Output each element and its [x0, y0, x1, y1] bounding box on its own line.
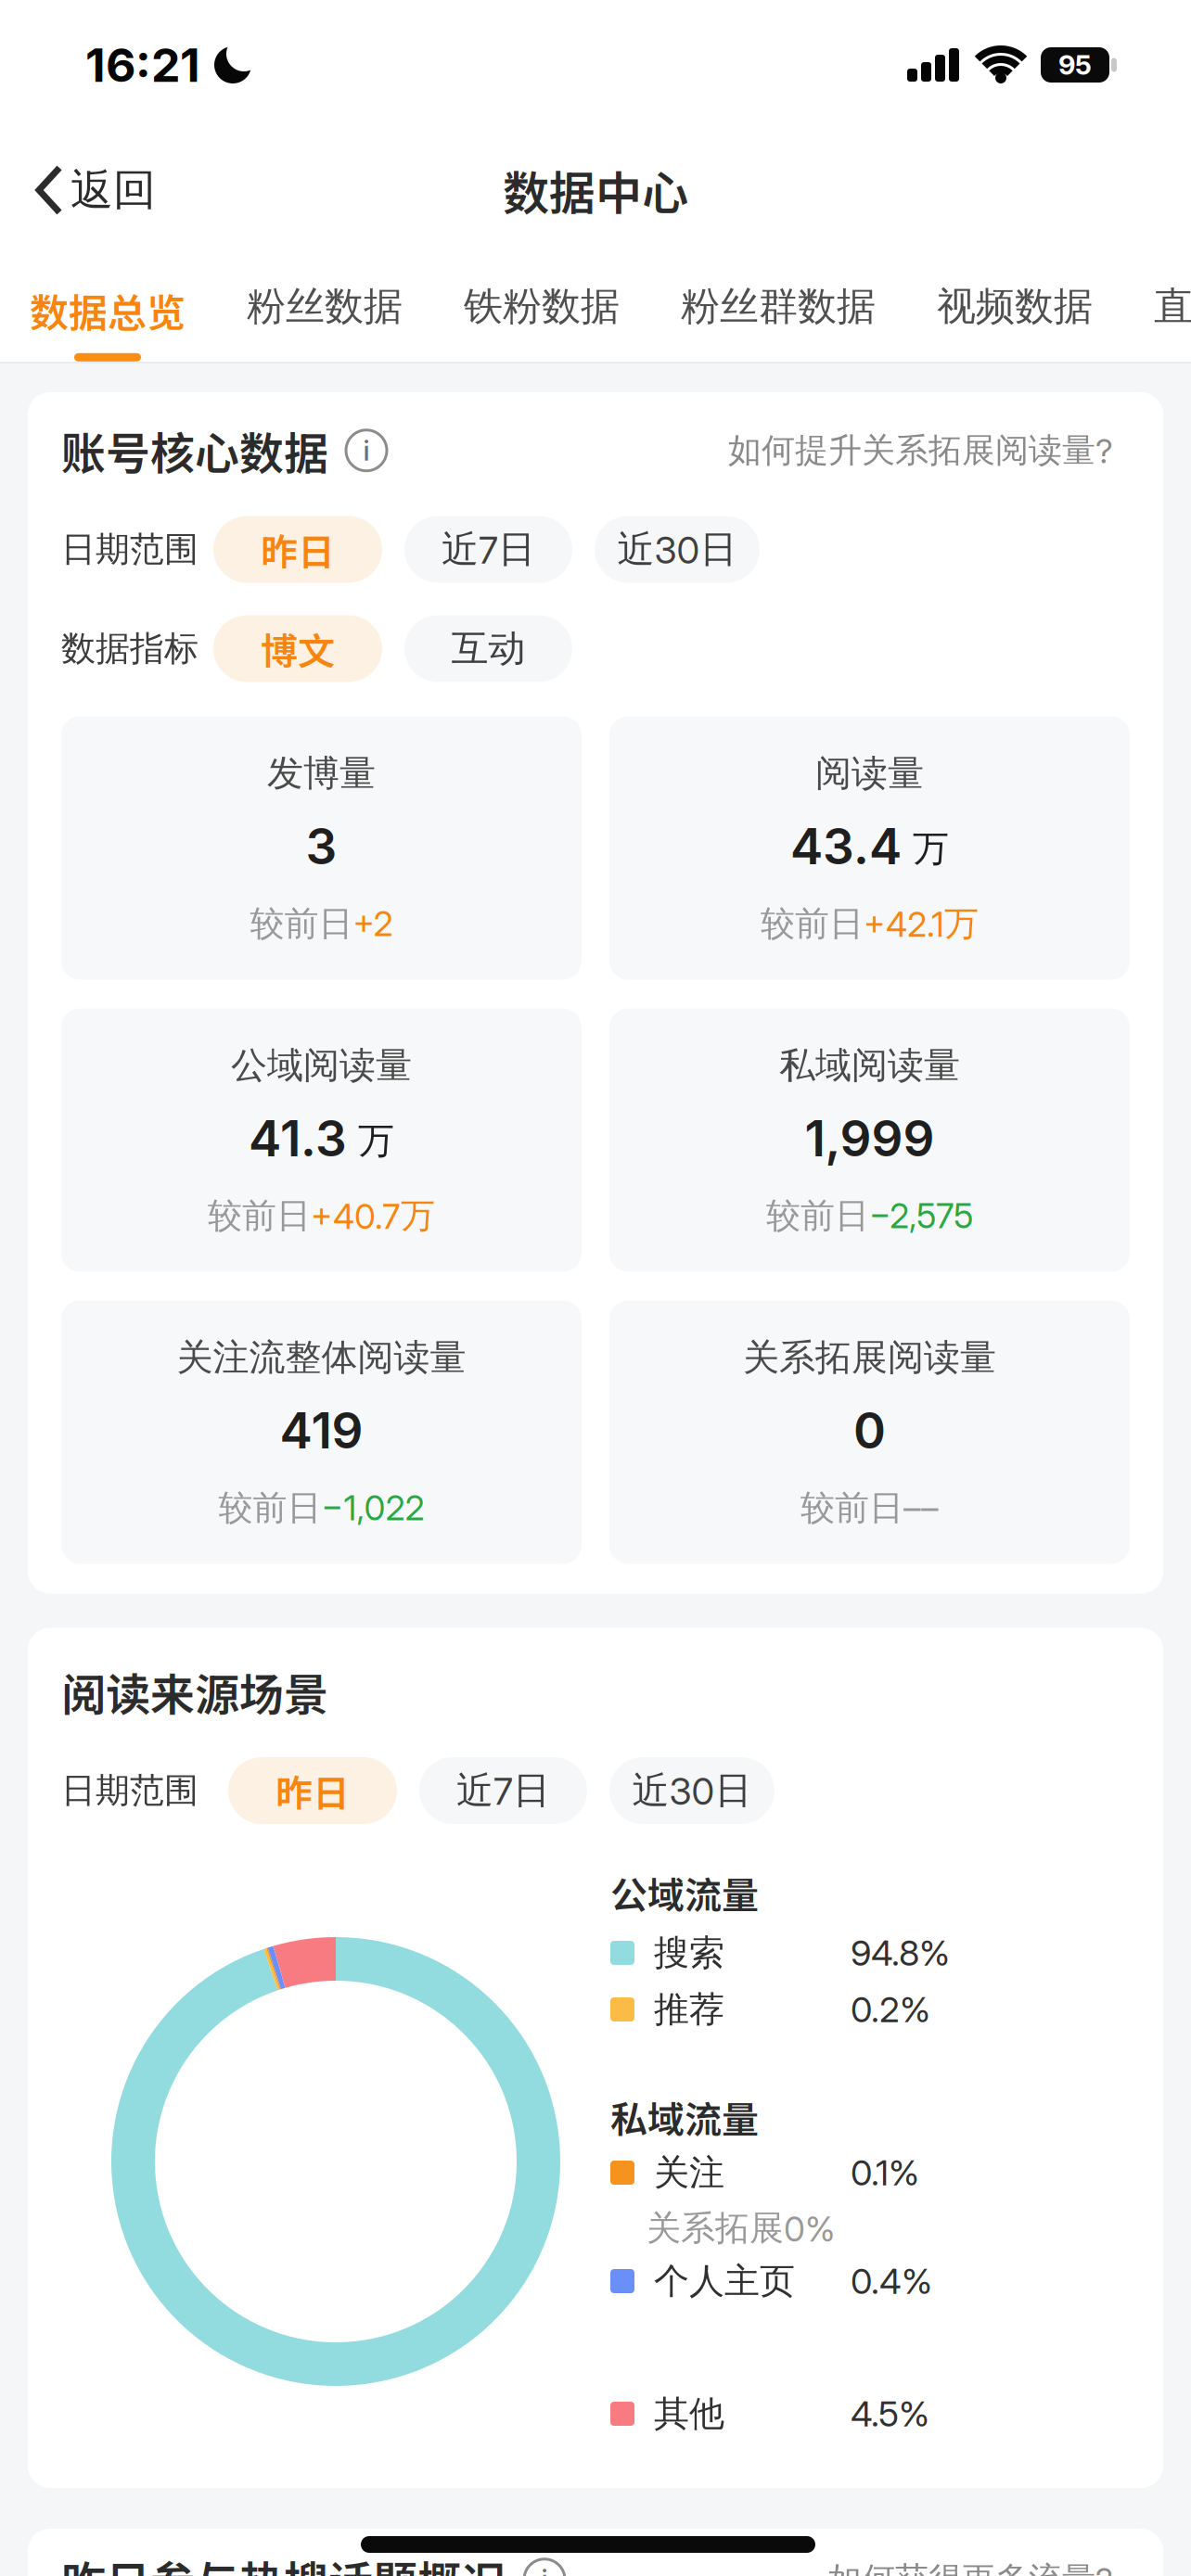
staticText: 41.3	[249, 1109, 347, 1168]
staticText: +2	[353, 903, 393, 944]
staticText: 其他	[654, 2392, 724, 2436]
button[interactable]: 近7日	[419, 1757, 587, 1824]
staticText: 关注流整体阅读量	[177, 1335, 466, 1380]
staticText: i	[541, 2563, 548, 2576]
button[interactable]: 昨日	[228, 1757, 397, 1824]
staticText: 发博量	[267, 751, 376, 796]
staticText: 近30日	[632, 1767, 752, 1814]
button[interactable]: 如何提升关系拓展阅读量?	[728, 429, 1113, 472]
staticText: 互动	[451, 625, 525, 672]
staticText: 关系拓展0%	[647, 2207, 835, 2250]
button[interactable]: 近7日	[404, 516, 572, 583]
button[interactable]: 数据总览	[30, 282, 186, 361]
staticText: −2,575	[869, 1195, 973, 1237]
staticText: 419	[280, 1401, 363, 1460]
staticText: 数据总览	[30, 282, 186, 338]
staticText: 个人主页	[654, 2259, 795, 2303]
staticText: 较前日	[800, 1486, 903, 1529]
button[interactable]: 昨日	[213, 516, 382, 583]
button[interactable]: 粉丝数据	[247, 282, 403, 331]
staticText: 较前日	[218, 1486, 321, 1529]
staticText: 返回	[70, 163, 156, 217]
staticText: 公域流量	[610, 1866, 759, 1919]
staticText: 0.1%	[851, 2151, 919, 2194]
button[interactable]: 近30日	[595, 516, 760, 583]
staticText: 直播数据	[1154, 282, 1191, 331]
staticText: 搜索	[654, 1931, 724, 1975]
staticText: +40.7万	[311, 1194, 435, 1237]
button[interactable]: 详情	[345, 429, 388, 472]
staticText: 关系拓展阅读量	[743, 1335, 996, 1380]
staticText: 万	[358, 1118, 394, 1164]
staticText: 阅读来源场景	[61, 1659, 328, 1724]
staticText: 关注	[654, 2150, 724, 2195]
staticText: 近7日	[442, 526, 535, 573]
staticText: 如何获得更多流量?	[828, 2558, 1113, 2576]
staticText: 近30日	[617, 526, 737, 573]
staticText: 0	[853, 1401, 886, 1460]
staticText: 如何提升关系拓展阅读量?	[728, 429, 1113, 472]
staticText: 数据指标	[61, 627, 198, 670]
staticText: 数据中心	[503, 157, 688, 224]
staticText: 近7日	[456, 1767, 550, 1814]
staticText: 43.4	[790, 817, 902, 876]
staticText: 3	[306, 817, 337, 876]
staticText: 95	[1058, 49, 1092, 81]
button[interactable]: 返回	[35, 163, 156, 217]
button[interactable]: 详情	[523, 2558, 566, 2576]
staticText: −1,022	[321, 1487, 424, 1529]
staticText: 较前日	[761, 902, 864, 945]
button[interactable]: 如何获得更多流量?	[828, 2558, 1113, 2576]
staticText: +42.1万	[864, 902, 979, 945]
staticText: 铁粉数据	[464, 282, 620, 331]
staticText: 4.5%	[851, 2392, 929, 2435]
staticText: 较前日	[208, 1194, 311, 1237]
staticText: 日期范围	[61, 1769, 198, 1812]
staticText: 粉丝群数据	[681, 282, 876, 331]
staticText: 昨日	[261, 523, 335, 576]
staticText: 较前日	[766, 1194, 869, 1237]
staticText: 博文	[261, 622, 335, 675]
staticText: 阅读量	[815, 751, 924, 796]
staticText: 粉丝数据	[247, 282, 403, 331]
button[interactable]: 近30日	[609, 1757, 775, 1824]
button[interactable]: 铁粉数据	[464, 282, 620, 331]
staticText: 私域阅读量	[779, 1043, 960, 1088]
staticText: 0.2%	[851, 1988, 930, 2031]
staticText: ––	[903, 1487, 939, 1529]
staticText: i	[363, 434, 370, 467]
button[interactable]: 粉丝群数据	[681, 282, 876, 331]
button[interactable]: 互动	[404, 615, 572, 682]
staticText: 万	[913, 826, 949, 871]
staticText: 94.8%	[851, 1932, 950, 1974]
staticText: 私域流量	[610, 2090, 759, 2144]
staticText: 16:21	[85, 37, 200, 93]
staticText: 较前日	[250, 902, 353, 945]
staticText: 视频数据	[937, 282, 1093, 331]
button[interactable]: 博文	[213, 615, 382, 682]
staticText: 账号核心数据	[61, 418, 328, 483]
staticText: 0.4%	[851, 2260, 932, 2302]
button[interactable]: 直播数据	[1154, 282, 1191, 331]
staticText: 公域阅读量	[231, 1043, 412, 1088]
staticText: 日期范围	[61, 528, 198, 571]
button[interactable]: 视频数据	[937, 282, 1093, 331]
staticText: 昨日	[275, 1764, 350, 1817]
staticText: 昨日参与热搜话题概况	[61, 2547, 506, 2576]
staticText: 推荐	[654, 1987, 724, 2032]
staticText: 1,999	[805, 1109, 935, 1168]
